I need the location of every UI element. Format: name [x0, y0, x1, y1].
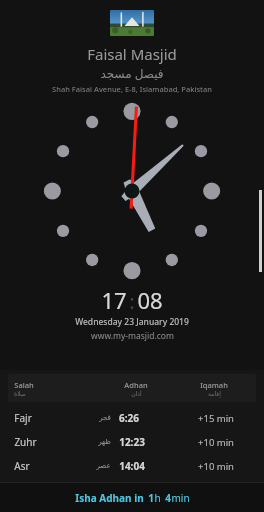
staticText: min: [171, 491, 190, 505]
staticText: Faisal Masjid: [87, 44, 177, 64]
staticText: www.my-masjid.com: [91, 330, 174, 342]
staticText: Zuhr: [14, 435, 37, 449]
staticText: 4: [165, 491, 171, 505]
button[interactable]: Asr: [8, 454, 256, 478]
staticText: فجر: [99, 414, 111, 422]
button[interactable]: Isha Adhan in: [0, 483, 264, 512]
staticText: 12:23: [119, 435, 145, 449]
staticText: 14:04: [119, 459, 145, 473]
staticText: 6:26: [119, 411, 139, 425]
button[interactable]: Mosque photo: [110, 10, 154, 36]
staticText: Salah: [14, 380, 34, 390]
staticText: h: [154, 491, 161, 505]
staticText: +10 min: [198, 436, 234, 449]
staticText: Fajr: [14, 411, 32, 425]
staticText: إقامة: [208, 390, 221, 397]
button[interactable]: Zuhr: [8, 430, 256, 454]
staticText: صلاة: [14, 390, 26, 397]
staticText: 08: [137, 285, 163, 315]
staticText: 17: [101, 285, 127, 315]
staticText: Isha Adhan in: [75, 491, 144, 505]
staticText: Wednesday 23 January 2019: [75, 316, 189, 328]
staticText: Iqamah: [200, 380, 228, 390]
staticText: عصر: [96, 462, 111, 470]
staticText: فيصل مسجد: [100, 65, 164, 81]
staticText: +10 min: [198, 460, 234, 473]
staticText: 1: [148, 491, 154, 505]
button[interactable]: Fajr: [8, 406, 256, 430]
staticText: Shah Faisal Avenue, E-8, Islamabad, Paki…: [52, 84, 212, 94]
staticText: :: [129, 288, 135, 315]
staticText: Asr: [14, 459, 30, 473]
staticText: أذان: [131, 390, 142, 397]
staticText: Adhan: [124, 380, 148, 390]
staticText: ظهر: [98, 438, 111, 446]
staticText: +15 min: [198, 412, 234, 425]
